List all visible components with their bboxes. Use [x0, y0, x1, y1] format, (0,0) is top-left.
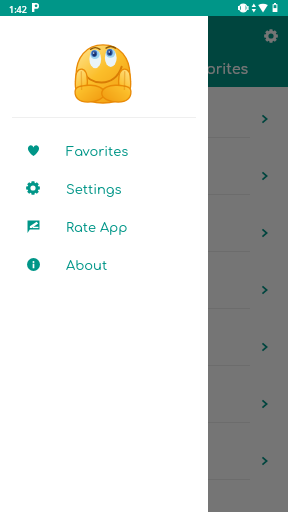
staticText: Favorites	[181, 62, 249, 78]
staticText: 1:42	[9, 3, 27, 15]
button[interactable]	[0, 423, 288, 480]
button[interactable]: Favorites	[0, 131, 208, 169]
button[interactable]	[0, 366, 288, 423]
button[interactable]: Rate App	[0, 207, 208, 245]
button[interactable]	[0, 309, 288, 366]
staticText: About	[66, 259, 108, 273]
button[interactable]	[0, 195, 288, 252]
staticText: Favorites	[66, 145, 129, 159]
button[interactable]	[0, 252, 288, 309]
button[interactable]: Settings	[0, 169, 208, 207]
button[interactable]	[0, 87, 288, 138]
button[interactable]	[0, 138, 288, 195]
button[interactable]: Settings	[251, 16, 288, 56]
staticText: Rate App	[66, 221, 128, 235]
button[interactable]: About	[0, 245, 208, 283]
button[interactable]	[0, 480, 288, 512]
staticText: Settings	[66, 183, 122, 197]
